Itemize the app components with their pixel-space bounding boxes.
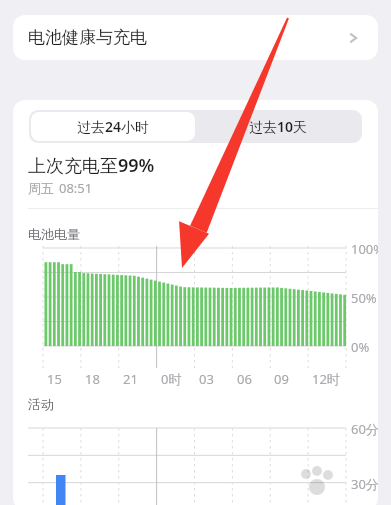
staticText: 100%: [351, 240, 378, 258]
staticText: 08:51: [59, 179, 93, 197]
staticText: 06: [237, 370, 252, 388]
staticText: 周五: [28, 180, 54, 196]
staticText: 电池电量: [28, 226, 80, 242]
staticText: 上次充电至99%: [28, 153, 155, 178]
staticText: 过去10天: [249, 117, 308, 136]
staticText: 21: [123, 370, 138, 388]
staticText: 电池健康与充电: [28, 27, 147, 48]
staticText: 09: [274, 370, 289, 388]
staticText: 60分钟: [351, 420, 378, 438]
staticText: 15: [47, 370, 62, 388]
staticText: 50%: [351, 289, 377, 307]
staticText: 过去24小时: [77, 117, 150, 136]
button[interactable]: 过去24小时: [31, 112, 195, 141]
staticText: 活动: [28, 396, 54, 412]
staticText: 03: [199, 370, 214, 388]
button[interactable]: 过去10天: [196, 112, 360, 141]
staticText: 18: [85, 370, 100, 388]
button[interactable]: 电池健康与充电: [13, 15, 378, 60]
staticText: 12时: [312, 370, 340, 388]
staticText: 0时: [161, 370, 182, 388]
staticText: 30分钟: [351, 475, 378, 493]
staticText: 0%: [351, 338, 370, 356]
